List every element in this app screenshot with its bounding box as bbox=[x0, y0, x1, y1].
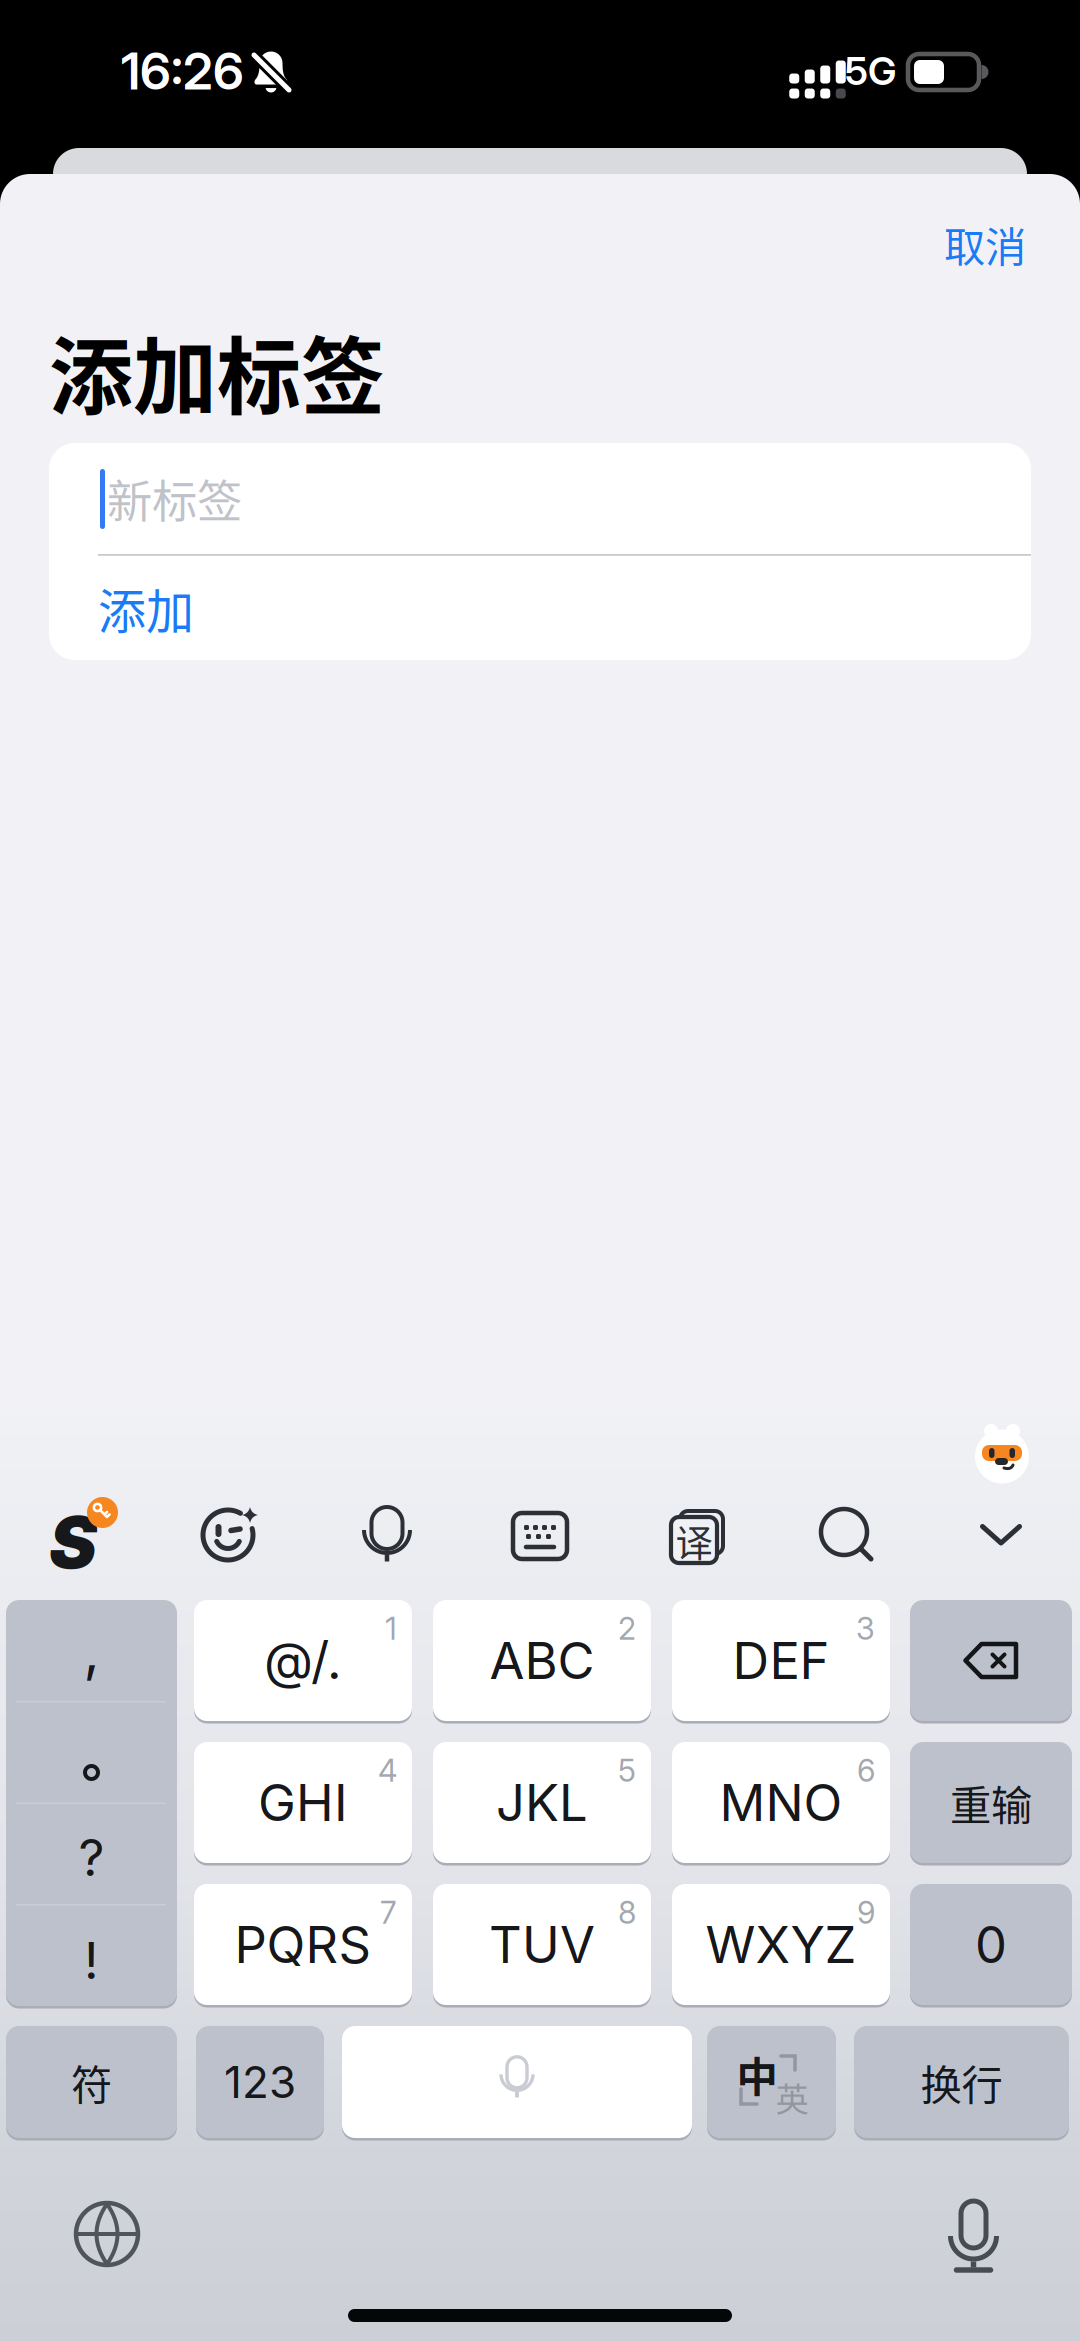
staticText: PQRS bbox=[234, 1914, 371, 1975]
staticText: 新标签 bbox=[107, 466, 242, 531]
button[interactable]: 重输 bbox=[910, 1742, 1072, 1863]
button[interactable]: ABC bbox=[433, 1600, 651, 1721]
staticText: 3 bbox=[856, 1610, 875, 1647]
button[interactable]: DEF bbox=[672, 1600, 890, 1721]
button[interactable]: 添加 bbox=[49, 556, 1031, 660]
staticText: 0 bbox=[975, 1914, 1007, 1975]
staticText: 1 bbox=[385, 1610, 397, 1647]
button[interactable]: 0 bbox=[910, 1884, 1072, 2005]
button[interactable]: , bbox=[6, 1600, 177, 2006]
staticText: 8 bbox=[618, 1894, 636, 1931]
button[interactable]: 符 bbox=[6, 2026, 177, 2138]
staticText: WXYZ bbox=[705, 1914, 856, 1975]
button[interactable]: 新标签 bbox=[49, 443, 1031, 554]
staticText: 换行 bbox=[920, 2052, 1002, 2112]
staticText: 符 bbox=[71, 2052, 112, 2112]
button[interactable]: JKL bbox=[433, 1742, 651, 1863]
button[interactable]: TUV bbox=[433, 1884, 651, 2005]
button[interactable]: PQRS bbox=[194, 1884, 412, 2005]
staticText: 中 bbox=[736, 2044, 777, 2104]
staticText: 5 bbox=[618, 1752, 636, 1789]
staticText: 添加 bbox=[98, 573, 194, 643]
staticText: 16:26 bbox=[121, 40, 244, 102]
button[interactable]: 中 bbox=[707, 2026, 836, 2138]
staticText: 重输 bbox=[950, 1773, 1032, 1832]
staticText: 9 bbox=[857, 1894, 875, 1931]
staticText: 4 bbox=[378, 1752, 397, 1789]
staticText: 取消 bbox=[944, 214, 1026, 274]
staticText: 译 bbox=[675, 1514, 712, 1568]
staticText: MNO bbox=[719, 1772, 842, 1833]
staticText: 5G bbox=[845, 48, 896, 94]
staticText: ! bbox=[84, 1930, 99, 1991]
staticText: TUV bbox=[489, 1914, 595, 1975]
staticText: 6 bbox=[857, 1752, 875, 1789]
button[interactable]: 删除 bbox=[910, 1600, 1072, 1721]
button[interactable]: MNO bbox=[672, 1742, 890, 1863]
staticText: JKL bbox=[496, 1772, 588, 1833]
staticText: , bbox=[83, 1617, 99, 1684]
staticText: S bbox=[49, 1498, 97, 1585]
button[interactable]: GHI bbox=[194, 1742, 412, 1863]
staticText: GHI bbox=[258, 1772, 348, 1833]
staticText: 2 bbox=[618, 1610, 636, 1647]
staticText: ABC bbox=[489, 1630, 594, 1691]
button[interactable]: WXYZ bbox=[672, 1884, 890, 2005]
staticText: DEF bbox=[732, 1630, 829, 1691]
staticText: 添加标签 bbox=[49, 310, 385, 432]
staticText: @/. bbox=[264, 1630, 342, 1691]
button[interactable]: 123 bbox=[196, 2026, 324, 2138]
button[interactable]: 换行 bbox=[854, 2026, 1069, 2138]
staticText: ? bbox=[78, 1827, 104, 1888]
staticText: 123 bbox=[224, 2055, 296, 2109]
staticText: 英 bbox=[775, 2073, 808, 2121]
button[interactable]: 空格 bbox=[342, 2026, 692, 2138]
button[interactable]: @/. bbox=[194, 1600, 412, 1721]
staticText: 7 bbox=[380, 1894, 397, 1931]
